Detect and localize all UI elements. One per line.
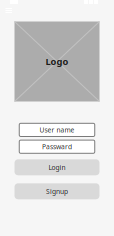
- button[interactable]: User name: [19, 123, 95, 136]
- button[interactable]: Login: [14, 159, 99, 175]
- button[interactable]: Menu: [5, 8, 12, 13]
- staticText: Logo: [45, 55, 68, 68]
- staticText: User name: [39, 125, 74, 134]
- staticText: Passward: [42, 142, 72, 151]
- button[interactable]: Passward: [19, 140, 95, 153]
- button[interactable]: Signup: [14, 183, 99, 199]
- staticText: Signup: [46, 187, 68, 196]
- staticText: Login: [48, 163, 65, 172]
